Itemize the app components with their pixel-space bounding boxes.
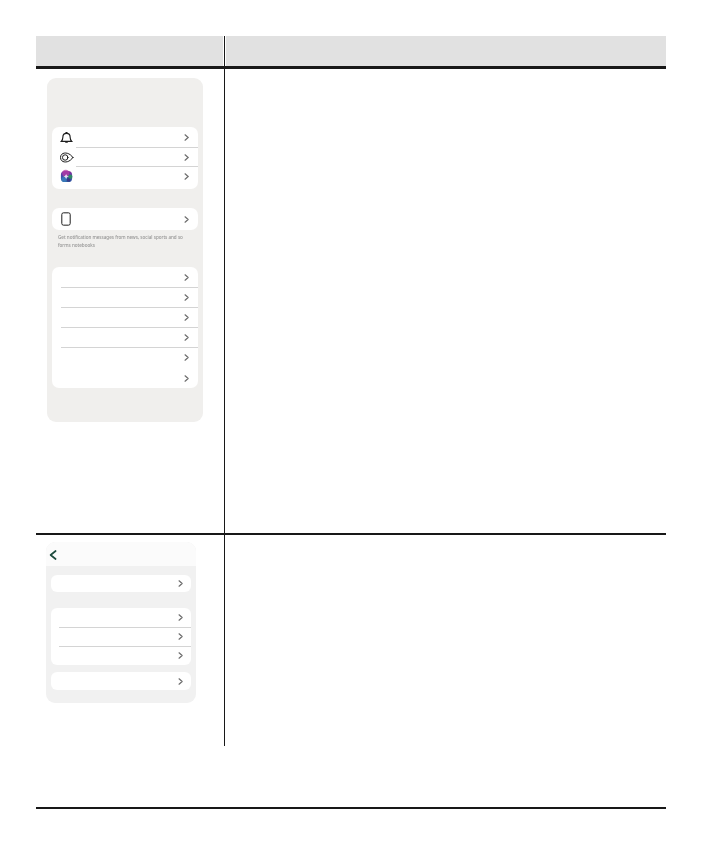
button[interactable]: Privacy <box>52 327 198 347</box>
button[interactable]: Setting 2 <box>51 627 191 646</box>
button[interactable]: Setting 3 <box>51 646 191 665</box>
button[interactable]: Advanced <box>51 672 191 690</box>
button[interactable]: Setting 1 <box>51 608 191 627</box>
button[interactable]: About phone <box>52 208 198 230</box>
staticText: Get notification messages from news, soc… <box>58 234 195 249</box>
button[interactable]: Battery <box>52 307 198 327</box>
button[interactable]: Account <box>51 575 191 592</box>
button[interactable]: Security <box>52 347 198 367</box>
button[interactable]: System <box>52 368 198 388</box>
button[interactable]: Notifications <box>52 127 198 147</box>
button[interactable]: Back <box>46 548 60 562</box>
button[interactable]: Assistant <box>52 166 198 186</box>
button[interactable]: Apps <box>52 267 198 287</box>
button[interactable]: Display <box>52 147 198 167</box>
button[interactable]: Storage <box>52 287 198 307</box>
